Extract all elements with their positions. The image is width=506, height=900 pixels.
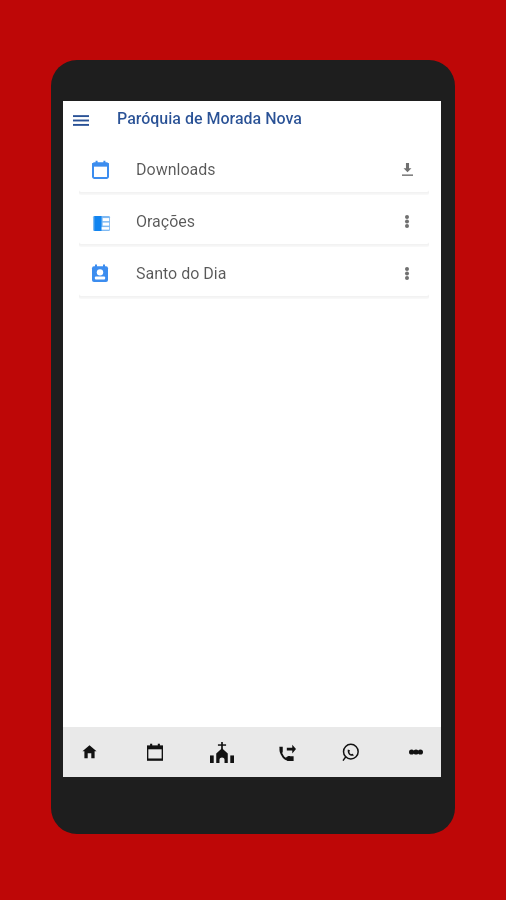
staticText: Downloads — [136, 160, 216, 179]
button[interactable]: Orações — [79, 198, 429, 244]
button[interactable]: Downloads — [79, 146, 429, 192]
button[interactable]: Church — [206, 727, 238, 777]
button[interactable]: Home — [73, 727, 105, 777]
button[interactable]: More options — [394, 260, 420, 286]
button[interactable]: Santo do Dia — [79, 250, 429, 296]
button[interactable]: Open navigation menu — [61, 103, 101, 137]
button[interactable]: Download — [394, 156, 420, 182]
button[interactable]: Calendar — [139, 727, 171, 777]
staticText: Santo do Dia — [136, 264, 227, 283]
button[interactable]: More options — [394, 208, 420, 234]
button[interactable]: Call — [271, 727, 303, 777]
staticText: Paróquia de Morada Nova — [117, 109, 302, 128]
button[interactable]: WhatsApp — [334, 727, 366, 777]
staticText: Orações — [136, 212, 196, 231]
button[interactable]: More — [400, 727, 432, 777]
